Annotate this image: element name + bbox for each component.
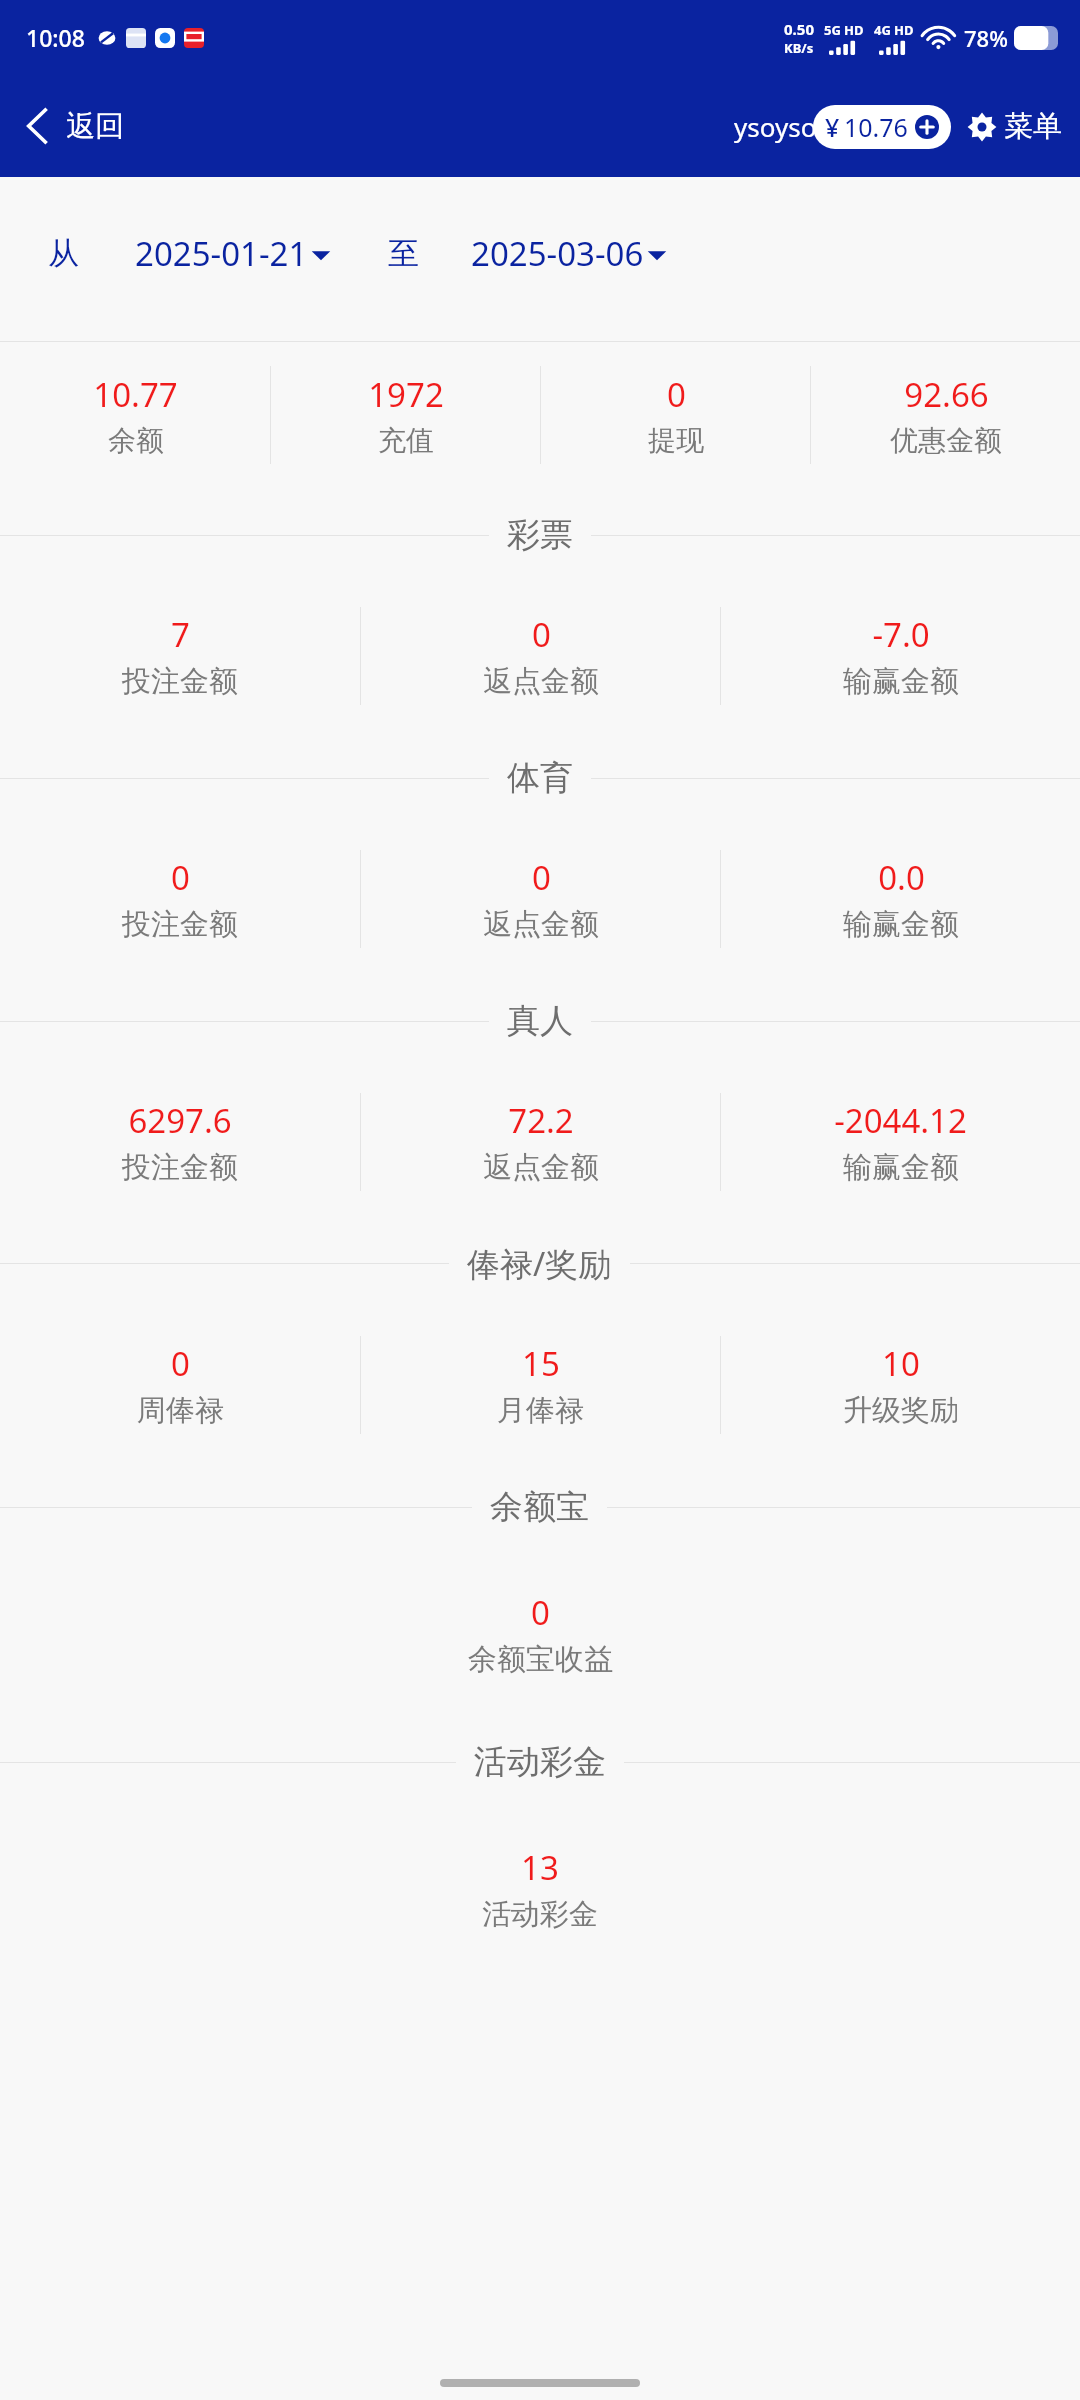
staticText: 优惠金额 [890, 423, 1002, 458]
staticText: 俸禄/奖励 [467, 1241, 612, 1286]
staticText: 从 [48, 234, 79, 273]
staticText: 返点金额 [483, 663, 599, 700]
button[interactable]: -7.0 [721, 582, 1080, 730]
button[interactable]: 0 [0, 1311, 360, 1459]
staticText: 0 [667, 372, 686, 417]
button[interactable]: 0 [361, 825, 720, 973]
staticText: 5G [824, 21, 841, 39]
button[interactable]: 6297.6 [0, 1068, 360, 1216]
button[interactable]: 7 [0, 582, 360, 730]
staticText: 4G [874, 21, 891, 39]
staticText: 升级奖励 [843, 1392, 959, 1429]
other: Recharge [915, 115, 939, 139]
button[interactable]: 13 [0, 1809, 1080, 1969]
staticText: HD [894, 21, 914, 39]
staticText: 真人 [507, 1000, 573, 1042]
button[interactable]: -2044.12 [721, 1068, 1080, 1216]
staticText: 0.0 [878, 855, 925, 900]
staticText: KB/s [784, 39, 814, 57]
staticText: 活动彩金 [482, 1896, 598, 1933]
staticText: HD [844, 21, 864, 39]
staticText: 投注金额 [122, 906, 238, 943]
button[interactable]: ¥ [813, 105, 951, 149]
staticText: 2025-03-06 [471, 231, 644, 276]
button[interactable]: 92.66 [811, 342, 1080, 487]
button[interactable]: 0 [541, 342, 810, 487]
staticText: 余额 [108, 423, 164, 458]
button[interactable]: 72.2 [361, 1068, 720, 1216]
staticText: 0 [532, 855, 551, 900]
button[interactable]: 10.77 [0, 342, 270, 487]
button[interactable]: 0 [361, 582, 720, 730]
staticText: 余额宝 [490, 1486, 589, 1528]
button[interactable]: 10 [721, 1311, 1080, 1459]
staticText: 至 [388, 234, 419, 273]
button[interactable]: 15 [361, 1311, 720, 1459]
staticText: 菜单 [1004, 108, 1062, 145]
staticText: 余额宝收益 [468, 1641, 613, 1678]
staticText: 彩票 [507, 514, 573, 556]
staticText: 92.66 [904, 372, 989, 417]
staticText: 输赢金额 [843, 906, 959, 943]
staticText: 返点金额 [483, 906, 599, 943]
staticText: 体育 [507, 757, 573, 799]
button[interactable]: 0.0 [721, 825, 1080, 973]
staticText: 0 [171, 855, 190, 900]
staticText: 0 [532, 612, 551, 657]
button[interactable]: 2025-01-21 [131, 221, 336, 286]
staticText: -2044.12 [834, 1098, 967, 1143]
staticText: 78% [964, 23, 1008, 53]
button[interactable]: 1972 [271, 342, 540, 487]
staticText: 返回 [66, 108, 124, 145]
staticText: 提现 [648, 423, 704, 458]
staticText: 充值 [378, 423, 434, 458]
staticText: ¥ [825, 110, 840, 144]
staticText: 输赢金额 [843, 663, 959, 700]
staticText: 6297.6 [128, 1098, 232, 1143]
staticText: 周俸禄 [137, 1392, 224, 1429]
staticText: 月俸禄 [497, 1392, 584, 1429]
staticText: 1972 [368, 372, 444, 417]
staticText: 活动彩金 [474, 1741, 606, 1783]
staticText: 7 [171, 612, 190, 657]
staticText: 0 [171, 1341, 190, 1386]
staticText: 10.76 [844, 110, 908, 144]
staticText: 投注金额 [122, 1149, 238, 1186]
button[interactable]: 0 [0, 1554, 1080, 1714]
staticText: 10 [882, 1341, 920, 1386]
button[interactable]: 2025-03-06 [467, 221, 672, 286]
staticText: 13 [521, 1845, 559, 1890]
staticText: 输赢金额 [843, 1149, 959, 1186]
other: Menu [967, 112, 997, 142]
staticText: 0.50 [784, 19, 814, 39]
button[interactable]: 0 [0, 825, 360, 973]
staticText: 返点金额 [483, 1149, 599, 1186]
staticText: 10.77 [93, 372, 178, 417]
staticText: ysoyso [734, 109, 817, 144]
button[interactable]: Menu [963, 100, 1066, 153]
staticText: -7.0 [872, 612, 930, 657]
staticText: 10:08 [26, 22, 85, 53]
staticText: 72.2 [508, 1098, 574, 1143]
button[interactable]: 返回 [18, 98, 130, 154]
staticText: 2025-01-21 [135, 231, 308, 276]
staticText: 投注金额 [122, 663, 238, 700]
staticText: 15 [522, 1341, 560, 1386]
staticText: 0 [531, 1590, 550, 1635]
